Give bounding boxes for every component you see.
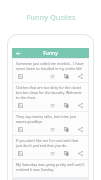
button[interactable]: Image bbox=[16, 72, 25, 81]
button[interactable]: Favorite bbox=[48, 125, 57, 134]
button[interactable]: Copy bbox=[62, 149, 71, 158]
button[interactable]: Copy bbox=[62, 101, 71, 110]
button[interactable]: Back bbox=[12, 48, 24, 58]
button[interactable]: Favorite bbox=[48, 149, 57, 158]
button[interactable]: Image bbox=[16, 125, 25, 134]
button[interactable]: Someone just called me morbid... I have … bbox=[13, 59, 88, 82]
button[interactable]: Copy bbox=[62, 125, 71, 134]
button[interactable]: Share bbox=[76, 101, 85, 110]
button[interactable]: My Saturday was going pretty well until … bbox=[13, 160, 88, 177]
staticText: If you don't like me I'm cool with that … bbox=[16, 138, 85, 148]
button[interactable]: Favorite bbox=[48, 101, 57, 110]
button[interactable]: Image bbox=[16, 149, 25, 158]
staticText: Funny Quotes bbox=[26, 12, 76, 22]
button[interactable]: Share bbox=[76, 125, 85, 134]
button[interactable]: Favorite bbox=[48, 72, 57, 81]
button[interactable]: Share bbox=[76, 72, 85, 81]
staticText: They say money talks, but mine just wave… bbox=[16, 114, 85, 124]
button[interactable]: If you don't like me I'm cool with that … bbox=[13, 136, 88, 159]
staticText: Funny bbox=[43, 50, 58, 57]
staticText: Clothes that are too dirty for the close… bbox=[16, 85, 85, 100]
staticText: My Saturday was going pretty well until … bbox=[16, 162, 85, 172]
button[interactable]: Clothes that are too dirty for the close… bbox=[13, 83, 88, 111]
button[interactable]: They say money talks, but mine just wave… bbox=[13, 112, 88, 135]
staticText: Someone just called me morbid... I have … bbox=[16, 61, 85, 71]
button[interactable]: Share bbox=[76, 149, 85, 158]
button[interactable]: Image bbox=[16, 101, 25, 110]
button[interactable]: Copy bbox=[62, 72, 71, 81]
